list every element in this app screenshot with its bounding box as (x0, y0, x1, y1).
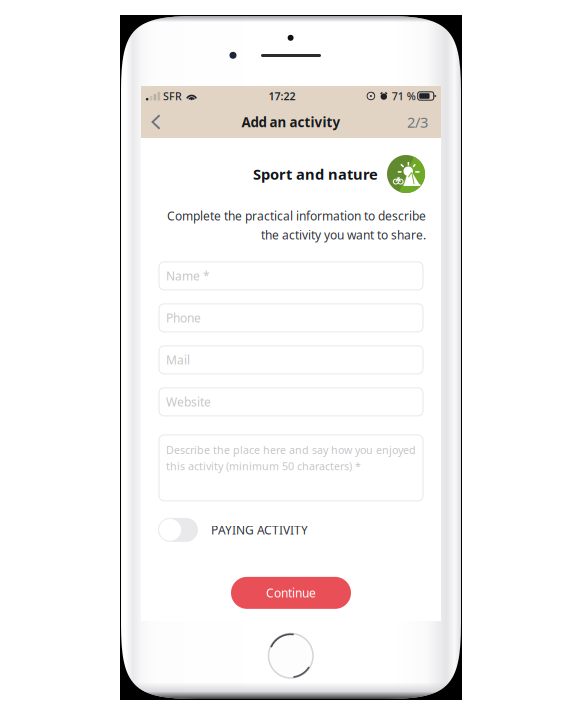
staticText: SFR (163, 89, 182, 103)
staticText: Continue (266, 585, 316, 601)
button[interactable]: Back (143, 106, 169, 138)
staticText: Phone (166, 310, 201, 326)
staticText: Name * (166, 268, 210, 284)
staticText: 2/3 (407, 112, 428, 132)
staticText: this activity (minimum 50 characters) * (166, 459, 361, 473)
staticText: PAYING ACTIVITY (211, 522, 308, 538)
button[interactable]: Name * (159, 262, 423, 290)
button[interactable]: Website (159, 388, 423, 416)
button[interactable]: Paying activity (158, 518, 198, 542)
staticText: 17:22 (269, 89, 296, 103)
staticText: Add an activity (241, 113, 340, 131)
staticText: Website (166, 394, 211, 410)
staticText: Complete the practical information to de… (167, 208, 426, 224)
staticText: 71 % (392, 89, 416, 103)
button[interactable]: Continue (231, 577, 351, 609)
button[interactable]: Mail (159, 346, 423, 374)
staticText: the activity you want to share. (261, 227, 426, 243)
staticText: Mail (166, 352, 190, 368)
staticText: Sport and nature (253, 164, 378, 184)
button[interactable]: Describe the place here and say how you … (159, 435, 423, 501)
button[interactable]: Phone (159, 304, 423, 332)
staticText: Describe the place here and say how you … (166, 443, 416, 457)
